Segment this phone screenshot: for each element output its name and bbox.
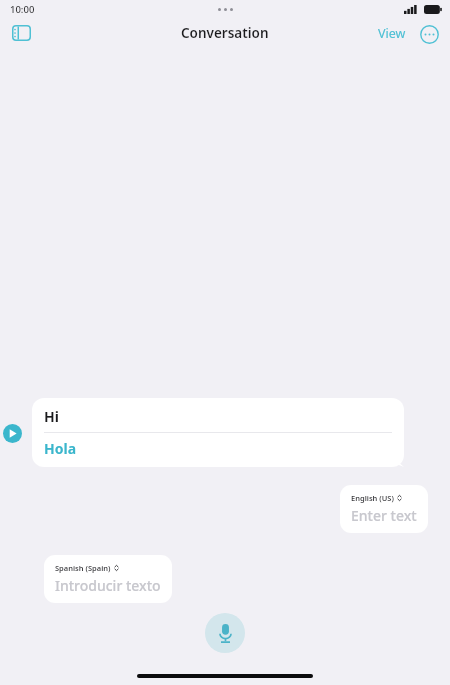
staticText: Hola [44, 439, 77, 458]
button[interactable]: Play translation [0, 421, 24, 445]
button[interactable]: Spanish (Spain) [44, 555, 172, 603]
button[interactable]: More options [418, 23, 440, 45]
staticText: Hi [44, 407, 59, 426]
button[interactable]: Record speech [205, 613, 245, 653]
staticText: Enter text [351, 506, 417, 525]
staticText: English (US) [351, 493, 394, 503]
staticText: Spanish (Spain) [55, 563, 111, 573]
button[interactable]: Hi [32, 398, 404, 467]
staticText: 10:00 [10, 3, 35, 16]
button[interactable]: View [376, 21, 408, 46]
staticText: View [378, 25, 406, 42]
staticText: Introducir texto [55, 576, 161, 595]
staticText: Conversation [181, 24, 269, 42]
button[interactable]: Toggle sidebar [6, 18, 36, 48]
button[interactable]: English (US) [340, 485, 428, 533]
